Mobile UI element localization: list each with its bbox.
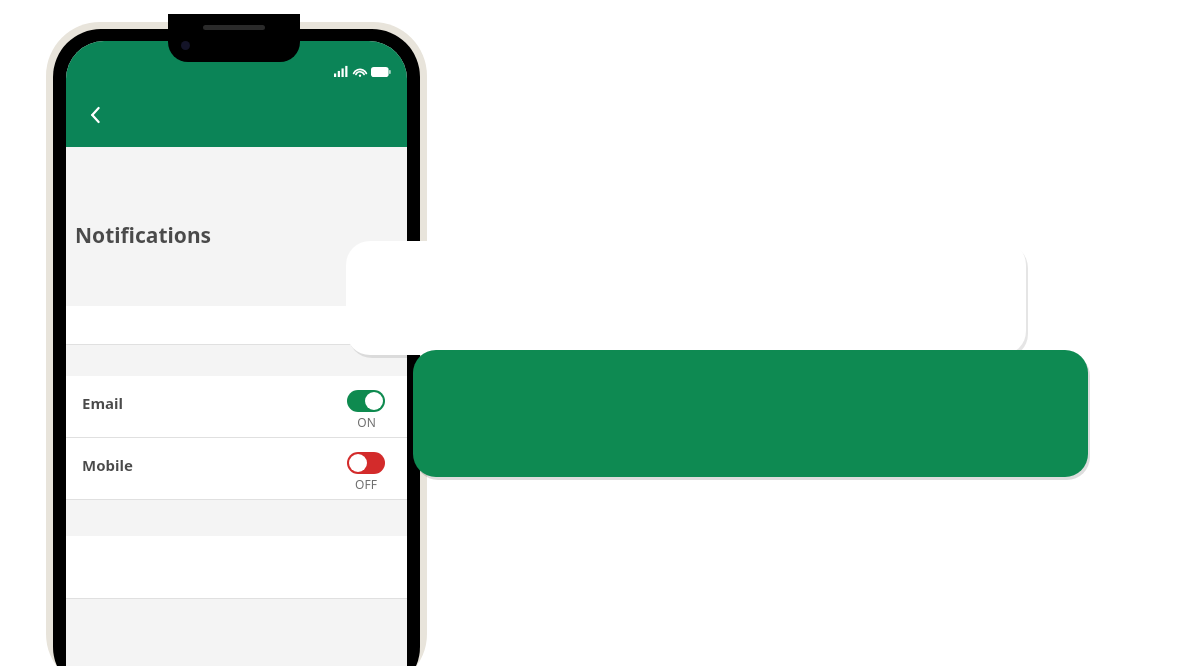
button[interactable]: Toggle off	[347, 452, 385, 474]
staticText: OFF	[355, 476, 377, 492]
button[interactable]: Card	[346, 241, 1026, 355]
button[interactable]: Email	[66, 376, 407, 437]
staticText: Email	[82, 393, 123, 413]
button[interactable]: Back	[74, 93, 118, 137]
staticText: Mobile	[82, 455, 133, 475]
staticText: Notifications	[75, 221, 212, 250]
button[interactable]: Toggle on	[347, 390, 385, 412]
button[interactable]: Action card	[413, 350, 1088, 477]
staticText: ON	[357, 414, 376, 430]
button[interactable]: Mobile	[66, 438, 407, 499]
